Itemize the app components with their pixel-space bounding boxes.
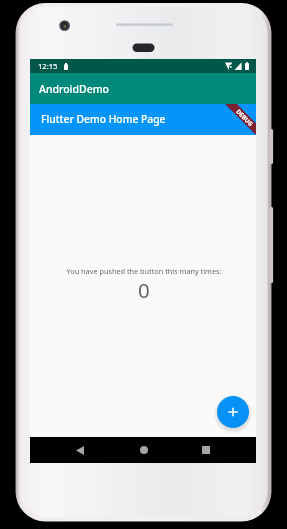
button[interactable]: Back [68, 437, 287, 463]
staticText: DEBUG [234, 108, 255, 128]
staticText: 0 [138, 276, 150, 304]
staticText: You have pushed the button this many tim… [66, 266, 222, 276]
staticText: AndroidDemo [39, 82, 110, 96]
staticText: 12:15 [38, 61, 58, 71]
button[interactable]: Home [140, 446, 148, 454]
button[interactable]: AndroidDemo [30, 73, 256, 104]
staticText: Flutter Demo Home Page [41, 112, 166, 126]
button[interactable]: Increment [217, 396, 249, 428]
